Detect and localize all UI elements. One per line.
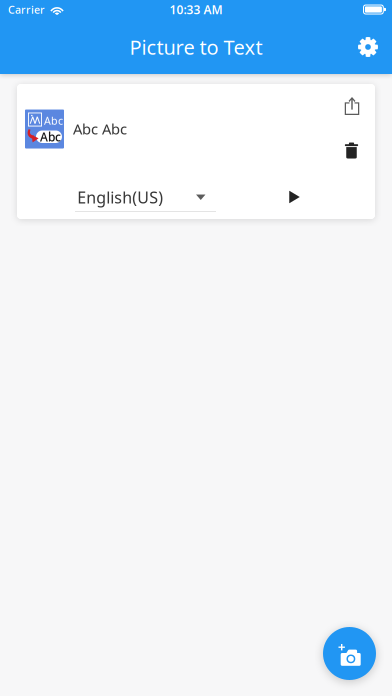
button[interactable]: Share [331, 88, 373, 124]
staticText: Picture to Text [129, 34, 262, 60]
staticText: 10:33 AM [169, 1, 222, 17]
staticText: Abc [44, 113, 63, 128]
staticText: Carrier [8, 2, 45, 17]
staticText: Abc [40, 129, 61, 145]
button[interactable]: English(US) [75, 184, 216, 214]
button[interactable]: Delete [330, 132, 372, 168]
button[interactable]: Play [275, 179, 313, 215]
button[interactable]: Settings [348, 25, 392, 69]
staticText: English(US) [77, 187, 163, 208]
button[interactable]: Add photo [323, 627, 376, 680]
staticText: Abc Abc [73, 119, 127, 138]
